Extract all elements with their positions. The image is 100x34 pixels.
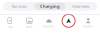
button[interactable]: Overview xyxy=(65,3,96,10)
button[interactable]: Vehicle xyxy=(39,14,59,34)
button[interactable]: Charging xyxy=(35,3,65,10)
staticText: Profile xyxy=(83,25,93,28)
button[interactable]: Services xyxy=(4,3,35,10)
button[interactable]: Store xyxy=(20,14,39,34)
staticText: Overview xyxy=(72,4,89,9)
staticText: Services xyxy=(12,4,27,9)
staticText: Store xyxy=(26,25,33,28)
staticText: Vehicle xyxy=(43,25,54,28)
staticText: Charging xyxy=(40,4,60,9)
staticText: Key xyxy=(8,25,12,28)
button[interactable]: Profile xyxy=(78,14,98,34)
button[interactable]: Navigate xyxy=(59,14,78,34)
button[interactable]: Key xyxy=(0,14,20,34)
